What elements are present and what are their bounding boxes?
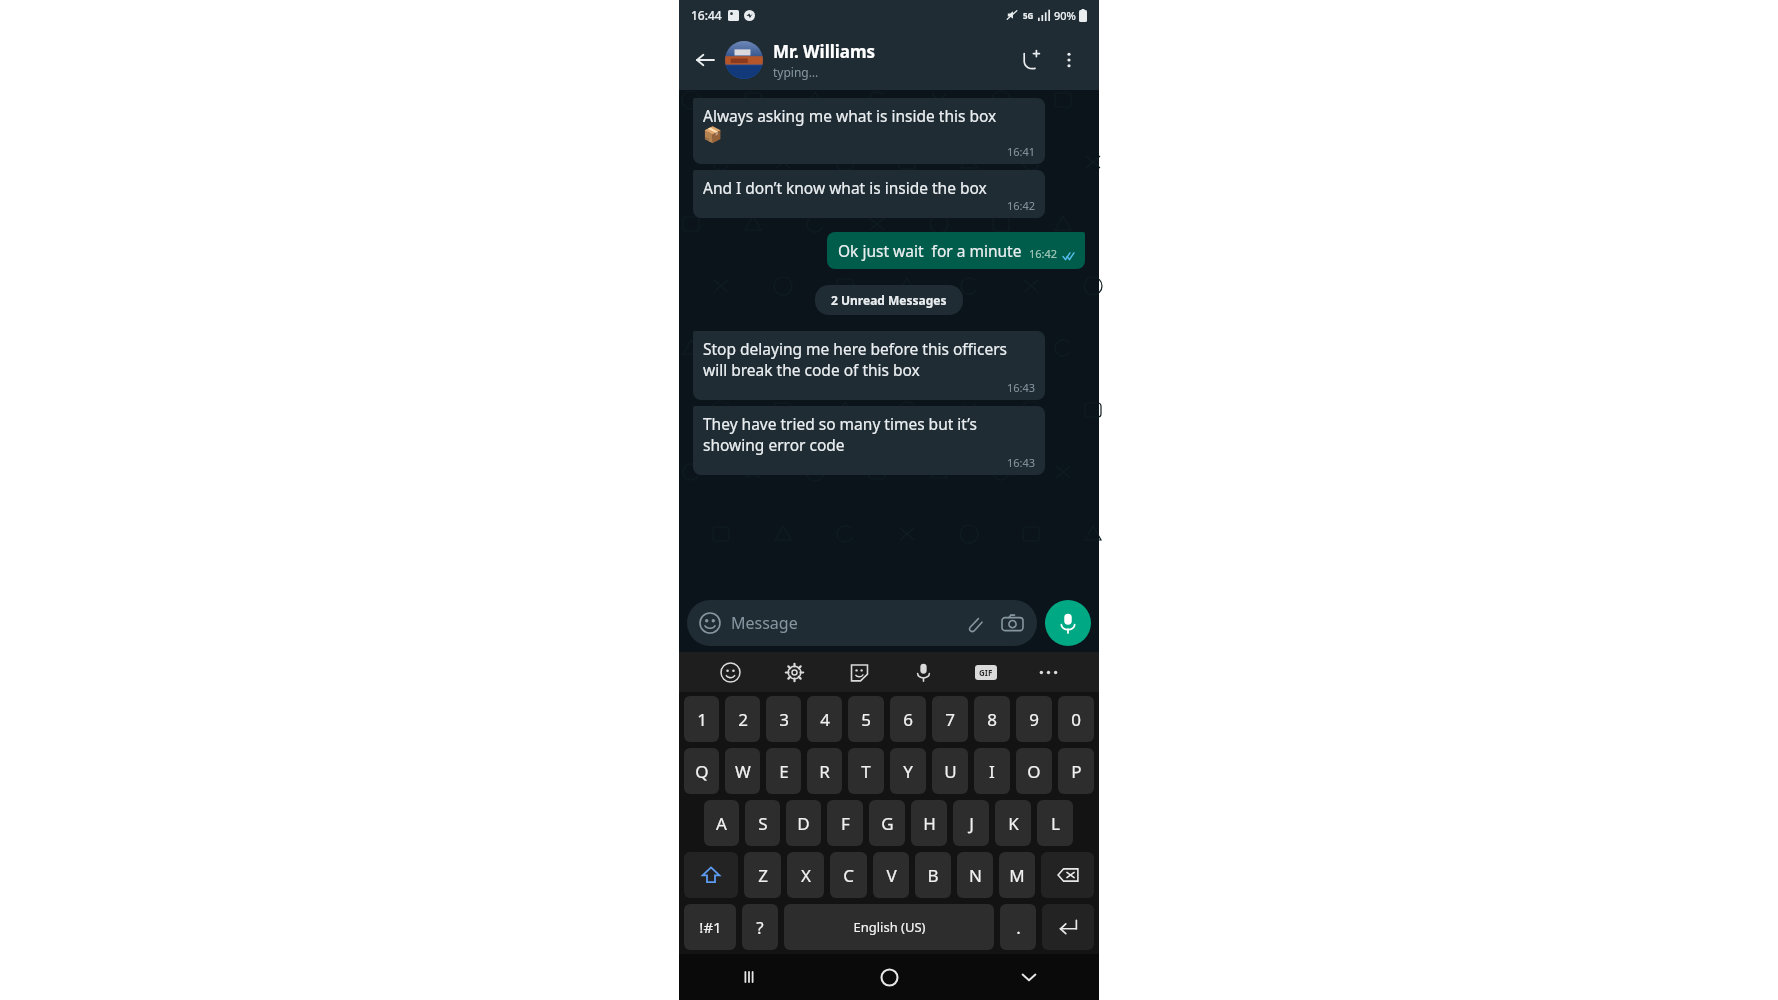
button[interactable]: Always asking me what is inside this box	[693, 98, 1045, 164]
staticText: V	[886, 864, 897, 887]
button[interactable]: Message	[687, 600, 1037, 646]
staticText: showing error code	[703, 434, 845, 455]
staticText: T	[861, 760, 871, 783]
staticText: P	[1071, 760, 1082, 783]
button[interactable]: 1	[684, 696, 719, 742]
button[interactable]: Stickers	[845, 658, 873, 686]
button[interactable]: N	[957, 852, 993, 898]
staticText: W	[735, 760, 751, 783]
button[interactable]: I	[974, 748, 1010, 794]
staticText: 7	[945, 708, 955, 731]
button[interactable]: K	[995, 800, 1031, 846]
staticText: F	[841, 812, 850, 835]
button[interactable]: English (US)	[784, 904, 994, 950]
staticText: 2	[738, 708, 748, 731]
button[interactable]: Voice message	[1045, 600, 1091, 646]
button[interactable]: 5	[848, 696, 884, 742]
button[interactable]: GIF	[974, 660, 998, 684]
staticText: R	[819, 760, 830, 783]
staticText: 16:41	[1007, 144, 1036, 159]
staticText: 4	[820, 708, 830, 731]
staticText: They have tried so many times but it’s	[703, 413, 977, 434]
button[interactable]: Voice call	[1011, 40, 1051, 80]
button[interactable]: U	[932, 748, 968, 794]
button[interactable]: R	[807, 748, 842, 794]
button[interactable]: More options	[1051, 42, 1087, 78]
button[interactable]: F	[827, 800, 863, 846]
staticText: C	[843, 864, 854, 887]
button[interactable]: Recent apps	[679, 954, 819, 1000]
button[interactable]: J	[953, 800, 989, 846]
button[interactable]: E	[766, 748, 801, 794]
button[interactable]: 0	[1058, 696, 1094, 742]
staticText: English (US)	[853, 918, 926, 936]
button[interactable]: D	[786, 800, 821, 846]
staticText: N	[969, 864, 982, 887]
button[interactable]: Y	[890, 748, 926, 794]
staticText: 5G	[1023, 10, 1034, 21]
staticText: 3	[779, 708, 789, 731]
button[interactable]: Enter	[1042, 904, 1094, 950]
button[interactable]: 6	[890, 696, 926, 742]
button[interactable]: 2	[725, 696, 760, 742]
button[interactable]: Back	[687, 42, 723, 78]
button[interactable]: C	[830, 852, 867, 898]
staticText: Message	[731, 612, 798, 634]
button[interactable]: G	[869, 800, 905, 846]
button[interactable]: And I don’t know what is inside the box	[693, 170, 1045, 218]
button[interactable]: Settings	[780, 658, 808, 686]
button[interactable]: Camera	[999, 610, 1025, 636]
staticText: typing…	[773, 64, 819, 80]
button[interactable]: Mr. Williams	[725, 40, 1011, 80]
button[interactable]: A	[704, 800, 739, 846]
staticText: M	[1009, 864, 1025, 887]
staticText: Q	[695, 760, 709, 783]
button[interactable]: Home	[819, 954, 959, 1000]
button[interactable]: L	[1037, 800, 1073, 846]
staticText: 9	[1029, 708, 1039, 731]
button[interactable]: Backspace	[1041, 852, 1094, 898]
button[interactable]: Attach	[961, 610, 987, 636]
button[interactable]: 9	[1016, 696, 1052, 742]
button[interactable]: .	[1000, 904, 1036, 950]
staticText: will break the code of this box	[703, 359, 920, 380]
staticText: GIF	[979, 667, 993, 678]
button[interactable]: X	[787, 852, 824, 898]
button[interactable]: Ok just wait for a minute	[827, 232, 1085, 269]
button[interactable]: Hide keyboard	[959, 954, 1099, 1000]
staticText: X	[801, 864, 811, 887]
button[interactable]: S	[745, 800, 780, 846]
staticText: And I don’t know what is inside the box	[703, 177, 987, 198]
staticText: U	[944, 760, 957, 783]
button[interactable]: W	[725, 748, 760, 794]
staticText: 16:44	[691, 7, 722, 23]
button[interactable]: V	[873, 852, 909, 898]
button[interactable]: Voice input	[909, 658, 937, 686]
button[interactable]: Stop delaying me here before this office…	[693, 331, 1045, 400]
button[interactable]: Z	[744, 852, 781, 898]
staticText: 5	[861, 708, 871, 731]
button[interactable]: 3	[766, 696, 801, 742]
button[interactable]: H	[911, 800, 947, 846]
button[interactable]: 8	[974, 696, 1010, 742]
button[interactable]: ?	[742, 904, 778, 950]
button[interactable]: B	[915, 852, 951, 898]
button[interactable]: Emoji	[716, 658, 744, 686]
button[interactable]: Shift	[684, 852, 738, 898]
staticText: H	[923, 812, 936, 835]
button[interactable]: 2 Unread Messages	[815, 285, 963, 315]
button[interactable]: 7	[932, 696, 968, 742]
button[interactable]: More	[1034, 658, 1062, 686]
button[interactable]: T	[848, 748, 884, 794]
button[interactable]: They have tried so many times but it’s	[693, 406, 1045, 475]
button[interactable]: P	[1058, 748, 1094, 794]
button[interactable]: O	[1016, 748, 1052, 794]
staticText: 90%	[1054, 8, 1076, 23]
button[interactable]: 4	[807, 696, 842, 742]
staticText: 6	[903, 708, 913, 731]
staticText: D	[797, 812, 810, 835]
staticText: 📦	[703, 126, 723, 144]
button[interactable]: M	[999, 852, 1035, 898]
button[interactable]: Q	[684, 748, 719, 794]
button[interactable]: !#1	[684, 904, 736, 950]
